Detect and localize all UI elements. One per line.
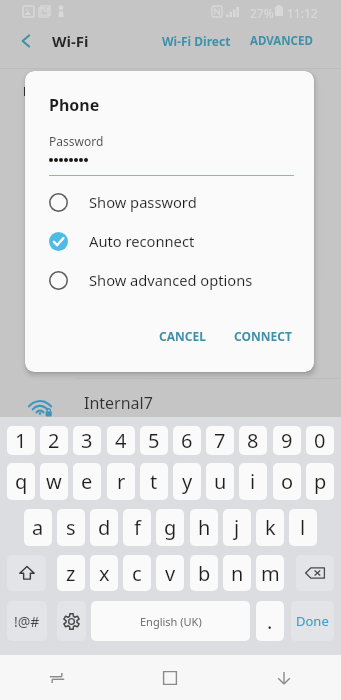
button[interactable]: f <box>123 509 151 546</box>
button[interactable]: Internal7 <box>0 392 341 417</box>
button[interactable]: Hide keyboard <box>227 655 341 700</box>
button[interactable]: y <box>173 463 201 500</box>
button[interactable]: l <box>289 509 317 546</box>
staticText: c <box>132 560 142 587</box>
staticText: Wi-Fi <box>52 31 89 51</box>
staticText: !@# <box>14 612 40 631</box>
button[interactable]: c <box>123 555 151 591</box>
button[interactable]: Shift <box>7 555 46 591</box>
staticText: k <box>265 514 276 541</box>
button[interactable]: Done <box>291 601 334 641</box>
staticText: n <box>231 560 244 587</box>
staticText: e <box>81 468 93 495</box>
button[interactable]: Back <box>10 25 42 56</box>
button[interactable]: Recent apps <box>0 655 113 700</box>
staticText: 5 <box>148 427 160 454</box>
button[interactable]: r <box>107 463 135 500</box>
staticText: t <box>150 468 158 495</box>
staticText: b <box>198 560 211 587</box>
staticText: Done <box>296 612 329 630</box>
button[interactable]: 0 <box>306 426 334 455</box>
staticText: Password <box>49 133 104 149</box>
button[interactable]: q <box>7 463 35 500</box>
button[interactable]: s <box>57 509 85 546</box>
staticText: x <box>99 560 110 587</box>
button[interactable]: Home <box>113 655 227 700</box>
staticText: y <box>182 468 193 495</box>
button[interactable]: Auto reconnect <box>25 227 314 255</box>
staticText: 0 <box>314 427 326 454</box>
button[interactable]: d <box>90 509 118 546</box>
button[interactable]: o <box>273 463 301 500</box>
button[interactable]: a <box>24 509 52 546</box>
staticText: p <box>314 468 327 495</box>
staticText: Phone <box>49 94 100 116</box>
button[interactable]: 1 <box>7 426 35 455</box>
staticText: Show password <box>89 192 197 212</box>
button[interactable]: 8 <box>239 426 267 455</box>
staticText: i <box>250 468 256 495</box>
staticText: . <box>267 608 273 635</box>
staticText: g <box>164 514 177 541</box>
button[interactable]: n <box>223 555 251 591</box>
staticText: 9 <box>281 427 293 454</box>
staticText: 27% <box>250 5 274 21</box>
staticText: m <box>261 560 280 587</box>
button[interactable]: 9 <box>273 426 301 455</box>
button[interactable]: 4 <box>107 426 135 455</box>
button[interactable]: CANCEL <box>147 319 218 353</box>
button[interactable]: k <box>256 509 284 546</box>
staticText: Wi-Fi Direct <box>162 33 231 49</box>
staticText: CANCEL <box>159 328 206 344</box>
staticText: s <box>66 514 76 541</box>
button[interactable]: v <box>156 555 184 591</box>
staticText: CONNECT <box>234 328 292 344</box>
staticText: ADVANCED <box>250 33 313 49</box>
staticText: 1 <box>15 427 27 454</box>
button[interactable]: 6 <box>173 426 201 455</box>
button[interactable]: u <box>206 463 234 500</box>
staticText: 11:12 <box>287 5 318 21</box>
staticText: Show advanced options <box>89 270 253 290</box>
button[interactable]: 3 <box>73 426 101 455</box>
staticText: Internal7 <box>84 392 153 414</box>
staticText: v <box>165 560 176 587</box>
button[interactable]: . <box>256 601 284 641</box>
button[interactable]: i <box>239 463 267 500</box>
button[interactable]: English (UK) <box>91 601 250 641</box>
button[interactable]: Show password <box>25 188 314 216</box>
button[interactable]: Show advanced options <box>25 266 314 294</box>
button[interactable]: 7 <box>206 426 234 455</box>
staticText: 8 <box>247 427 259 454</box>
staticText: English (UK) <box>140 614 202 629</box>
staticText: d <box>98 514 111 541</box>
staticText: 3 <box>81 427 93 454</box>
staticText: h <box>198 514 211 541</box>
staticText: f <box>134 514 141 541</box>
button[interactable]: 5 <box>140 426 168 455</box>
button[interactable]: j <box>223 509 251 546</box>
button[interactable]: m <box>256 555 284 591</box>
button[interactable]: w <box>40 463 68 500</box>
button[interactable]: e <box>73 463 101 500</box>
button[interactable]: g <box>156 509 184 546</box>
button[interactable]: Keyboard settings <box>57 601 86 641</box>
button[interactable]: CONNECT <box>222 319 304 353</box>
staticText: 6 <box>181 427 193 454</box>
button[interactable]: Backspace <box>296 555 334 591</box>
staticText: q <box>15 468 28 495</box>
staticText: r <box>117 468 126 495</box>
staticText: j <box>234 514 240 541</box>
staticText: 2 <box>48 427 60 454</box>
button[interactable]: t <box>140 463 168 500</box>
button[interactable]: z <box>57 555 85 591</box>
button[interactable]: x <box>90 555 118 591</box>
staticText: 7 <box>214 427 226 454</box>
button[interactable]: ADVANCED <box>241 26 322 56</box>
button[interactable]: Wi-Fi Direct <box>153 26 240 56</box>
button[interactable]: p <box>306 463 334 500</box>
button[interactable]: b <box>190 555 218 591</box>
button[interactable]: h <box>190 509 218 546</box>
button[interactable]: !@# <box>7 601 47 641</box>
button[interactable]: 2 <box>40 426 68 455</box>
